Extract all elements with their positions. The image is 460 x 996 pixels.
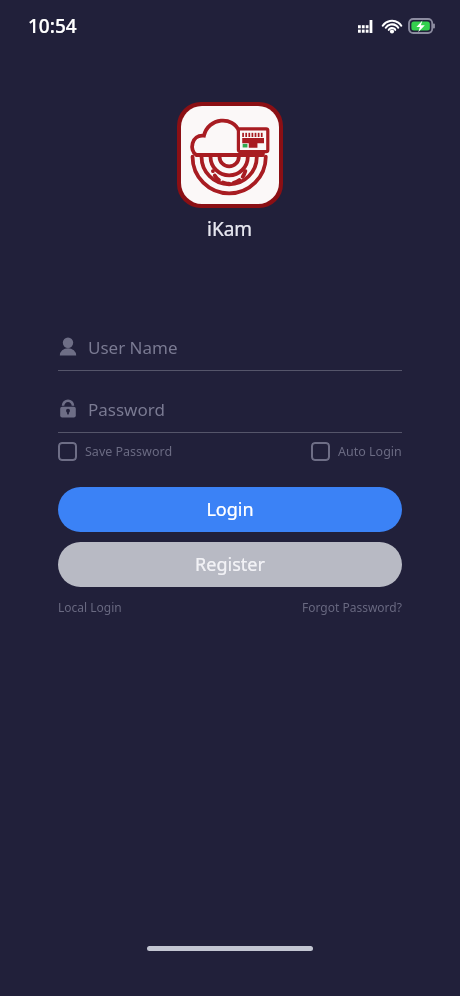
staticText: iKam <box>207 216 253 242</box>
staticText: Auto Login <box>338 443 402 460</box>
staticText: Forgot Password? <box>302 599 402 615</box>
button[interactable]: User name <box>58 330 402 371</box>
staticText: Local Login <box>58 599 122 615</box>
button[interactable]: Auto Login <box>311 442 402 461</box>
staticText: Password <box>88 398 165 421</box>
staticText: User Name <box>88 336 178 359</box>
staticText: 10:54 <box>28 13 77 39</box>
button[interactable]: Forgot Password? <box>302 599 402 615</box>
other: Password <box>58 399 78 419</box>
staticText: Register <box>195 552 265 577</box>
other: User name <box>58 337 78 357</box>
staticText: Save Password <box>85 443 173 460</box>
button[interactable]: Password <box>58 392 402 433</box>
button[interactable]: Local Login <box>58 599 122 615</box>
button[interactable]: Register <box>58 542 402 587</box>
staticText: Login <box>206 497 254 522</box>
button[interactable]: Login <box>58 487 402 532</box>
button[interactable]: Save Password <box>58 442 173 461</box>
